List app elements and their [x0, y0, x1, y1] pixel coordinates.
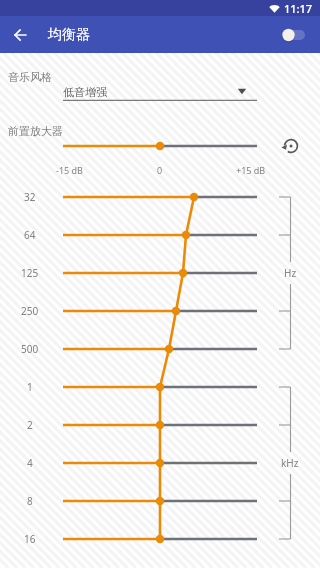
staticText: +15 dB	[236, 164, 266, 176]
staticText: 0	[157, 164, 163, 176]
staticText: 1	[27, 380, 33, 394]
staticText: kHz	[281, 456, 299, 470]
staticText: 500	[21, 342, 39, 356]
staticText: 前置放大器	[8, 124, 63, 138]
staticText: 11:17	[284, 1, 313, 16]
staticText: -15 dB	[56, 164, 83, 176]
staticText: 64	[24, 228, 36, 242]
staticText: 4	[27, 456, 33, 470]
staticText: Hz	[284, 266, 297, 280]
staticText: 250	[21, 304, 39, 318]
button[interactable]: 低音增强	[63, 84, 257, 101]
staticText: 32	[24, 190, 36, 204]
staticText: 8	[27, 494, 33, 508]
staticText: 音乐风格	[8, 70, 52, 84]
button[interactable]: Preamp	[63, 138, 257, 154]
button[interactable]: Toggle equalizer	[281, 25, 307, 45]
staticText: 低音增强	[63, 85, 107, 99]
button[interactable]: Reset	[281, 136, 301, 156]
staticText: 16	[24, 532, 36, 546]
staticText: 125	[21, 266, 39, 280]
button[interactable]: Back	[12, 23, 36, 47]
staticText: 均衡器	[48, 26, 90, 44]
staticText: 2	[27, 418, 33, 432]
